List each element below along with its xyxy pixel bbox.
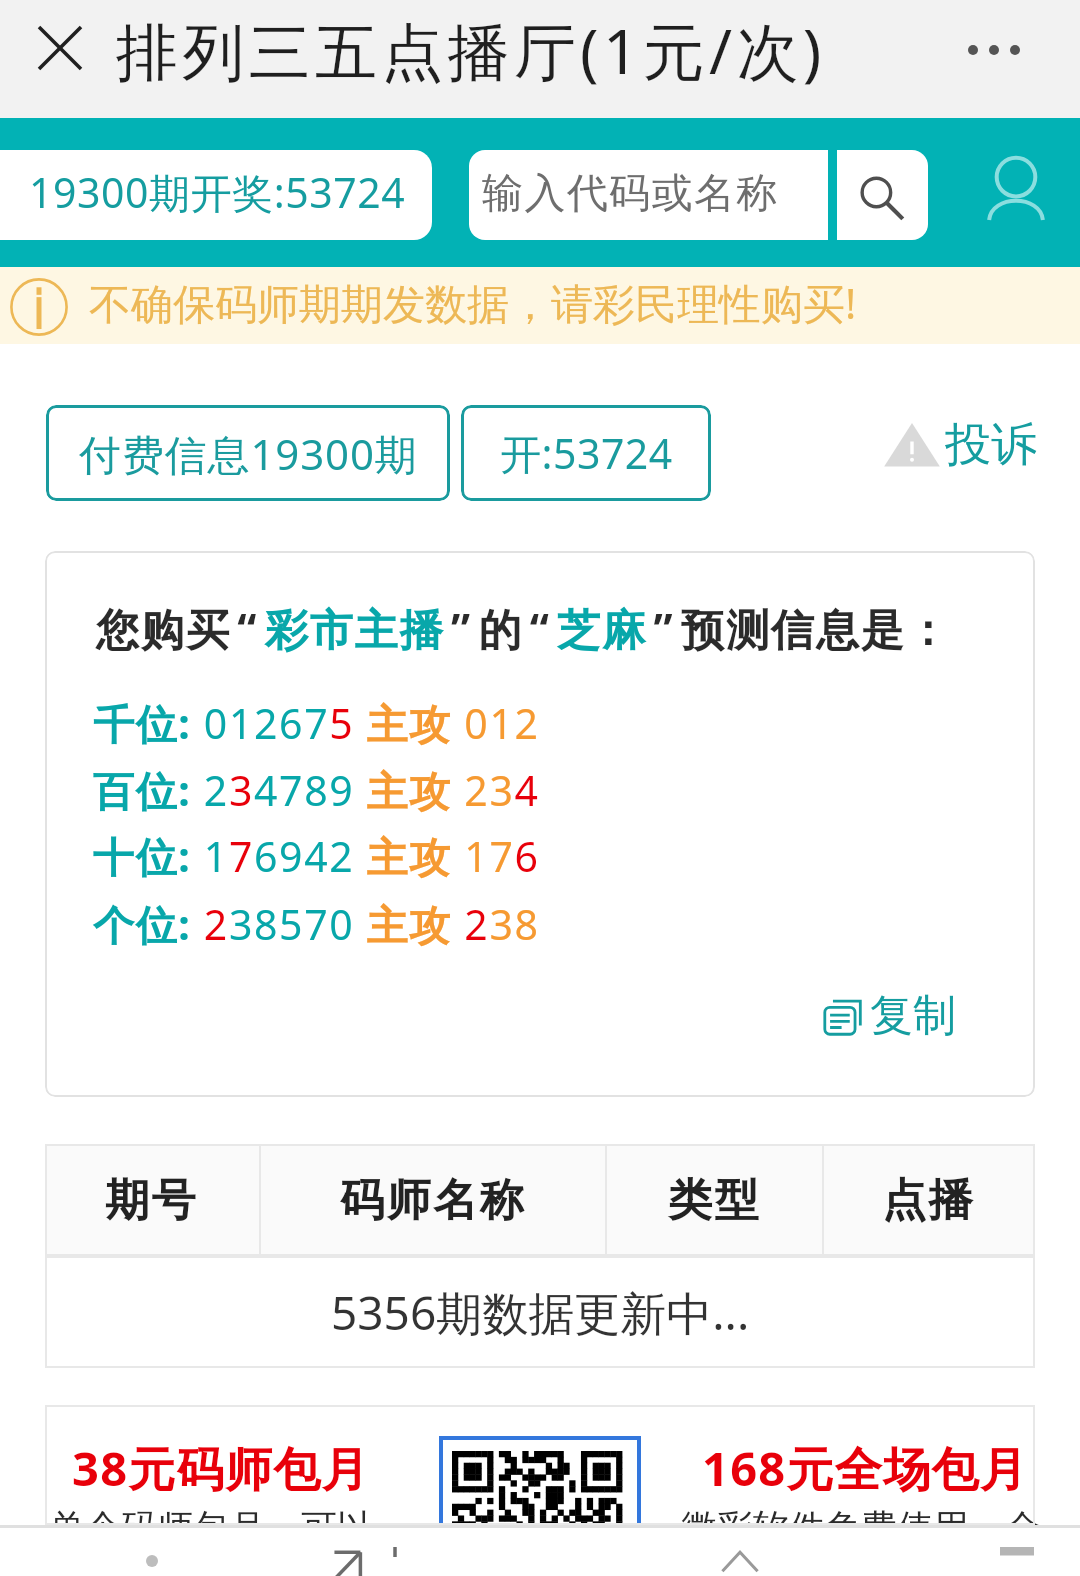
staticText: 投诉 (945, 416, 1037, 474)
staticText: 168元全场包月 (702, 1436, 1029, 1500)
staticText: 19300期开奖:53724 (29, 164, 406, 220)
staticText: 百位: 234789 主攻 234 (93, 762, 540, 818)
staticText: 您购买 “ 彩市主播 ” 的 “ 芝麻 ” 预测信息是： (96, 599, 951, 658)
button[interactable]: 19300期开奖:53724 (0, 150, 432, 240)
staticText: 千位: 012675 主攻 012 (93, 695, 540, 751)
button[interactable]: 输入代码或名称 (469, 150, 828, 240)
button[interactable]: 开:53724 (461, 405, 711, 501)
button[interactable]: 投诉 (883, 397, 1037, 493)
button[interactable]: Search (837, 150, 928, 240)
button[interactable]: Account (971, 143, 1061, 233)
staticText: 十位: 176942 主攻 176 (93, 828, 540, 884)
staticText: 复制 (870, 989, 956, 1043)
staticText: 排列三五点播厅(1元/次) (116, 8, 826, 93)
staticText: 38元码师包月 (72, 1436, 370, 1500)
button[interactable]: 38元码师包月 (45, 1405, 1035, 1525)
staticText: 码师名称 (340, 1173, 527, 1228)
staticText: 类型 (668, 1173, 762, 1228)
staticText: 不确保码师期期发数据，请彩民理性购买! (89, 274, 857, 331)
staticText: 单个码师包月，可以 (49, 1505, 373, 1550)
button[interactable]: More options (954, 10, 1034, 90)
staticText: 点播 (882, 1173, 976, 1228)
button[interactable]: 复制 (820, 988, 956, 1044)
staticText: 5356期数据更新中... (331, 1281, 750, 1344)
staticText: 输入代码或名称 (482, 168, 779, 220)
staticText: 个位: 238570 主攻 238 (93, 896, 540, 952)
button[interactable]: Close (22, 10, 97, 85)
button[interactable]: 付费信息19300期 (46, 405, 450, 501)
staticText: 期号 (105, 1173, 199, 1228)
staticText: 微彩软件免费使用，全 (681, 1505, 1041, 1550)
staticText: 付费信息19300期 (79, 425, 418, 482)
staticText: 开:53724 (500, 425, 673, 481)
